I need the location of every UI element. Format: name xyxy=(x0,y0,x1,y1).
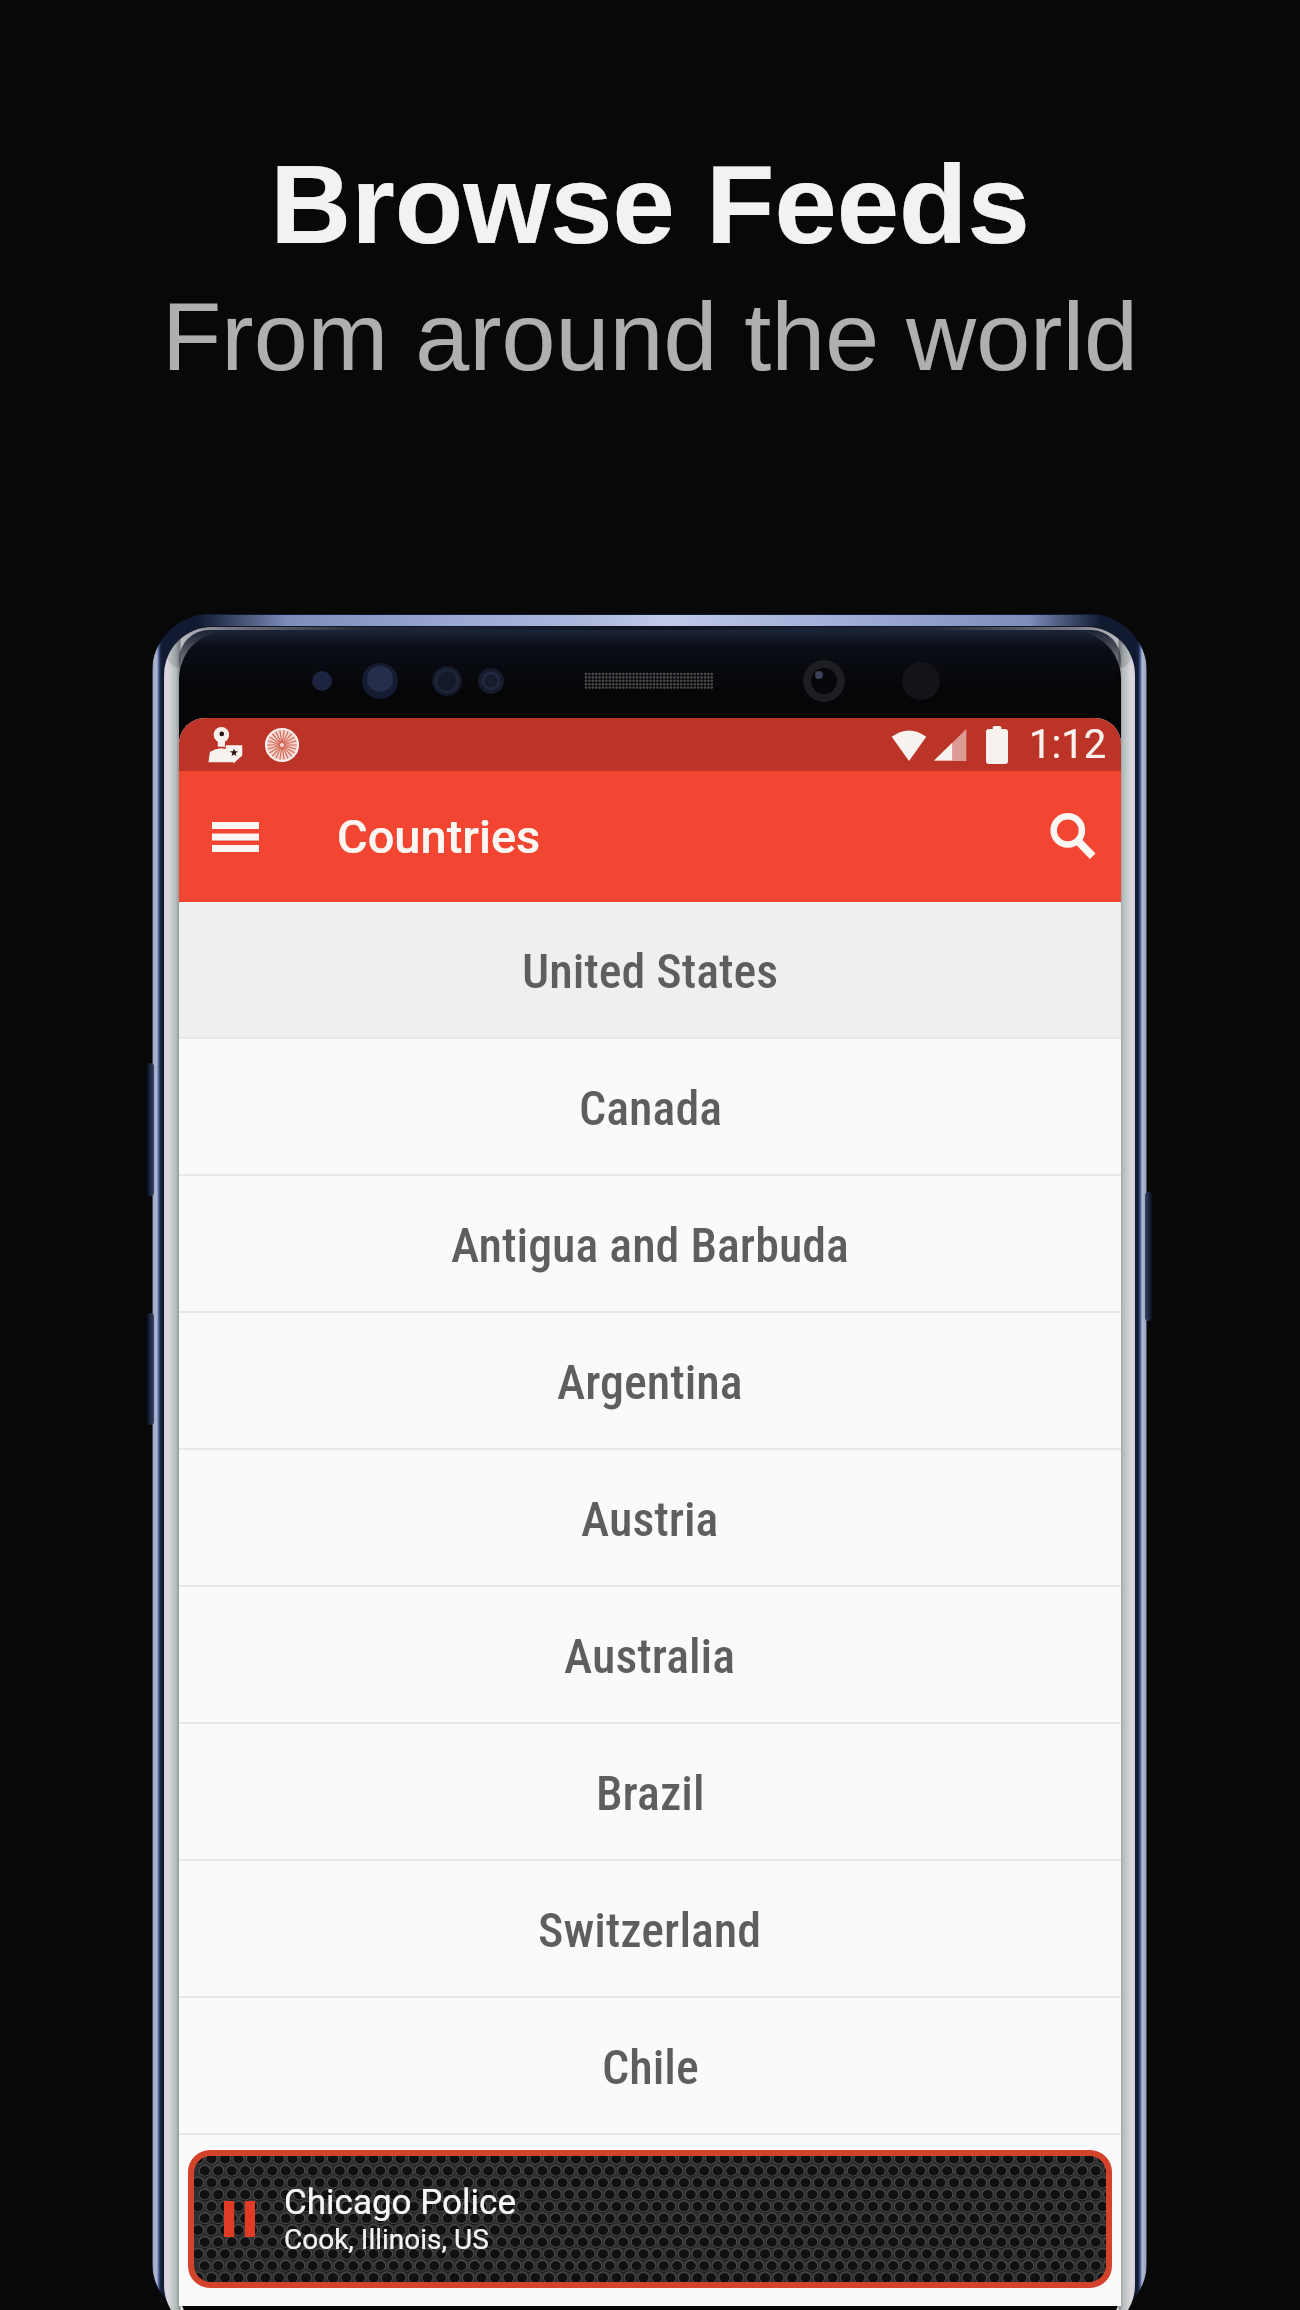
staticText: Countries xyxy=(337,809,541,864)
staticText: Antigua and Barbuda xyxy=(451,1217,849,1273)
staticText: Brazil xyxy=(596,1765,705,1821)
button[interactable]: Pause playback xyxy=(208,2171,271,2267)
staticText: Canada xyxy=(579,1080,722,1136)
staticText: 1:12 xyxy=(1029,721,1107,768)
button[interactable]: Austria xyxy=(179,1450,1121,1587)
staticText: From around the world xyxy=(162,282,1138,390)
button[interactable]: Chile xyxy=(179,1998,1121,2135)
button[interactable]: Switzerland xyxy=(179,1861,1121,1998)
staticText: Chile xyxy=(602,2039,699,2095)
button[interactable]: Antigua and Barbuda xyxy=(179,1176,1121,1313)
staticText: United States xyxy=(522,943,779,999)
button[interactable]: Canada xyxy=(179,1039,1121,1176)
button[interactable]: Australia xyxy=(179,1587,1121,1724)
button[interactable]: Open navigation drawer xyxy=(179,771,291,902)
button[interactable]: Search xyxy=(1023,771,1121,902)
staticText: Browse Feeds xyxy=(270,142,1030,267)
button[interactable]: Pause playback xyxy=(194,2156,1106,2282)
staticText: Argentina xyxy=(557,1354,743,1410)
staticText: Austria xyxy=(581,1491,719,1547)
button[interactable]: Brazil xyxy=(179,1724,1121,1861)
staticText: Switzerland xyxy=(538,1902,762,1958)
staticText: Cook, Illinois, US xyxy=(284,2223,489,2256)
button[interactable]: Argentina xyxy=(179,1313,1121,1450)
staticText: Chicago Police xyxy=(284,2182,516,2223)
button[interactable]: United States xyxy=(179,902,1121,1039)
staticText: Australia xyxy=(564,1628,736,1684)
